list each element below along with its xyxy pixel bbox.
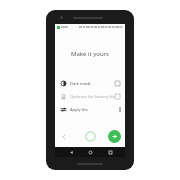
button[interactable]: Dark mode (55, 79, 125, 87)
button[interactable]: Apply the recommendations (55, 105, 125, 113)
staticText: Apply the recommendations (70, 107, 120, 112)
button[interactable]: Next (108, 130, 121, 143)
button[interactable]: Home (86, 148, 94, 156)
staticText: Optimize for battery life (70, 94, 115, 99)
button[interactable]: Toggle Dark mode (115, 81, 120, 86)
staticText: Dark mode (70, 81, 91, 86)
button[interactable]: Back (67, 148, 75, 156)
button[interactable]: Back (60, 133, 67, 140)
staticText: Make it yours (71, 50, 109, 58)
button[interactable]: Toggle Optimize for battery life (115, 94, 120, 99)
button[interactable]: Optimize for battery life (55, 92, 125, 100)
button[interactable]: Recent apps (106, 148, 114, 156)
button[interactable]: Progress (83, 129, 97, 143)
